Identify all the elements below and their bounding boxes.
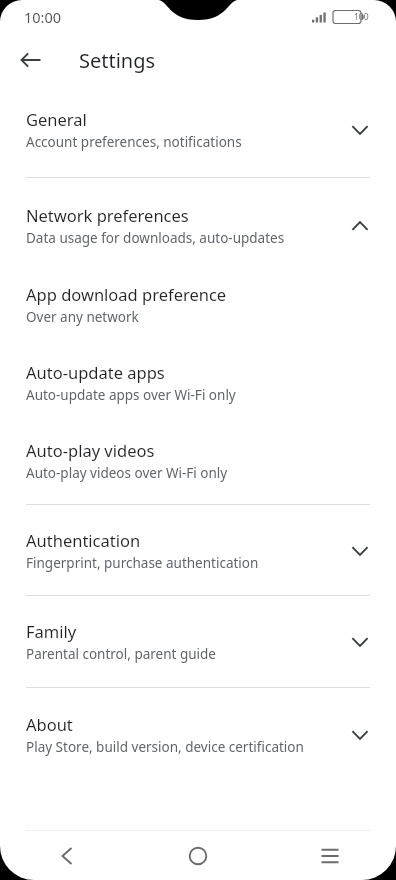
button[interactable]: Expand General [340, 110, 380, 150]
button[interactable]: Back [11, 40, 51, 80]
button[interactable]: Auto-update apps [0, 326, 396, 404]
button[interactable]: Authentication [0, 505, 396, 572]
button[interactable]: Expand Family [340, 622, 380, 662]
button[interactable]: Collapse Network preferences [340, 206, 380, 246]
button[interactable]: Back [0, 831, 132, 880]
button[interactable]: General [0, 108, 396, 151]
button[interactable]: Expand About [340, 715, 380, 755]
staticText: Settings [79, 47, 156, 74]
button[interactable]: App download preference [0, 247, 396, 326]
staticText: Auto-update apps [26, 361, 165, 383]
staticText: Network preferences [26, 204, 189, 226]
staticText: About [26, 713, 73, 735]
button[interactable]: Auto-play videos [0, 404, 396, 482]
staticText: 10:00 [24, 7, 62, 27]
button[interactable]: Network preferences [0, 178, 396, 247]
button[interactable]: Expand Authentication [340, 531, 380, 571]
staticText: General [26, 108, 87, 130]
staticText: Auto-update apps over Wi-Fi only [26, 386, 236, 404]
button[interactable]: Family [0, 596, 396, 663]
staticText: Data usage for downloads, auto-updates [26, 229, 285, 247]
staticText: Family [26, 620, 77, 642]
button[interactable]: About [0, 688, 396, 756]
staticText: Parental control, parent guide [26, 645, 216, 663]
staticText: App download preference [26, 283, 227, 305]
button[interactable]: Recent apps [264, 831, 396, 880]
staticText: 100 [354, 11, 369, 23]
staticText: Auto-play videos [26, 439, 155, 461]
staticText: Fingerprint, purchase authentication [26, 554, 259, 572]
staticText: Auto-play videos over Wi-Fi only [26, 464, 228, 482]
staticText: Play Store, build version, device certif… [26, 738, 304, 756]
staticText: Authentication [26, 529, 141, 551]
staticText: Account preferences, notifications [26, 133, 242, 151]
button[interactable]: Home [132, 831, 264, 880]
staticText: Over any network [26, 308, 139, 326]
